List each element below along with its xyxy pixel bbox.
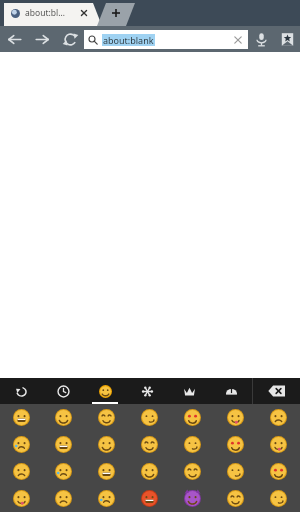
button[interactable]: Close tab [80,9,88,17]
button[interactable]: Emoji 11 [171,431,214,458]
button[interactable]: Emoji 1 [42,404,85,431]
button[interactable]: Emoji 13 [257,431,300,458]
button[interactable]: Emoji 22 [42,485,85,512]
staticText: about:bl… [25,7,65,19]
button[interactable]: Emoji 27 [257,485,300,512]
button[interactable]: Recent [42,378,84,404]
button[interactable]: Emoji 21 [0,485,42,512]
button[interactable]: Emoji 0 [0,404,42,431]
button[interactable]: Back [0,26,28,52]
button[interactable]: Undo [0,378,42,404]
button[interactable]: Emoji 7 [0,431,42,458]
button[interactable]: Emoji 15 [42,458,85,485]
staticText: about:blank [103,34,154,46]
button[interactable]: Emoji 2 [85,404,128,431]
button[interactable]: Emoji 14 [0,458,42,485]
button[interactable]: Emoji 3 [128,404,171,431]
button[interactable]: Clear [233,35,243,45]
button[interactable]: Travel [210,378,252,404]
button[interactable]: Reload [56,26,84,52]
button[interactable]: Emoji 12 [214,431,257,458]
button[interactable]: Voice search [248,26,274,52]
button[interactable]: Objects [168,378,210,404]
button[interactable]: Emoji 10 [128,431,171,458]
button[interactable]: Emoji 19 [214,458,257,485]
button[interactable]: New tab [97,0,135,26]
button[interactable]: Emoji 5 [214,404,257,431]
button[interactable]: Emoji 6 [257,404,300,431]
button[interactable]: Smileys [84,378,126,404]
button[interactable]: Tab about:blank [4,0,102,26]
button[interactable]: Nature [126,378,168,404]
button[interactable]: Emoji 9 [85,431,128,458]
button[interactable]: Emoji 23 [85,485,128,512]
button[interactable]: Forward [28,26,56,52]
button[interactable]: Backspace [253,378,300,404]
button[interactable]: Emoji 24 [128,485,171,512]
button[interactable]: Emoji 4 [171,404,214,431]
button[interactable]: Emoji 16 [85,458,128,485]
button[interactable]: Emoji 26 [214,485,257,512]
button[interactable]: about:blank [84,30,248,49]
button[interactable]: Emoji 20 [257,458,300,485]
button[interactable]: Bookmarks [274,26,300,52]
button[interactable]: Emoji 18 [171,458,214,485]
button[interactable]: Emoji 17 [128,458,171,485]
button[interactable]: Emoji 25 [171,485,214,512]
button[interactable]: Emoji 8 [42,431,85,458]
